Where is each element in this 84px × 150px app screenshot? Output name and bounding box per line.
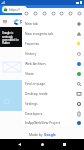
button[interactable]: https://flutter.dev: [2, 6, 27, 13]
staticText: Find on page: [25, 81, 46, 85]
button[interactable]: Recents: [61, 141, 68, 148]
staticText: Share: [25, 71, 34, 75]
staticText: Developers: [25, 111, 43, 115]
button[interactable]: Web Archives: [22, 58, 84, 68]
button[interactable]: Developers: [22, 108, 84, 118]
button[interactable]: Settings: [22, 98, 84, 108]
button[interactable]: Back: [16, 141, 23, 148]
button[interactable]: Page info: [58, 10, 65, 17]
button[interactable]: Bookmarks: [67, 10, 74, 17]
button[interactable]: History: [22, 48, 84, 58]
staticText: History: [25, 51, 37, 55]
staticText: New incognito tab: [25, 31, 54, 35]
staticText: Favorites: [25, 41, 40, 45]
button[interactable]: Tabs: [76, 10, 83, 17]
button[interactable]: Find on page: [22, 78, 84, 88]
staticText: Made by: [29, 132, 44, 137]
staticText: https://flutter.dev: [9, 8, 27, 12]
button[interactable]: New incognito tab: [22, 28, 84, 38]
staticText: Google: [44, 132, 56, 137]
staticText: Flutter: [20, 19, 35, 25]
staticText: Settings: [25, 101, 38, 105]
button[interactable]: Favorites: [22, 38, 84, 48]
staticText: Web Archives: [25, 61, 46, 65]
button[interactable]: Home: [39, 141, 46, 148]
button[interactable]: Desktop mode: [22, 88, 84, 98]
staticText: InAppWebView Project: [25, 120, 61, 124]
button[interactable]: New tab: [22, 18, 84, 28]
button[interactable]: New tab: [23, 10, 30, 17]
button[interactable]: Share: [22, 68, 84, 78]
button[interactable]: Forward: [41, 10, 48, 17]
staticText: Desktop mode: [25, 91, 48, 95]
button[interactable]: Download: [50, 10, 57, 17]
button[interactable]: InAppWebView Project: [22, 118, 84, 126]
staticText: Google is seriously committed to Flutter: [2, 31, 22, 44]
button[interactable]: Reload: [32, 10, 39, 17]
staticText: New tab: [25, 21, 38, 25]
